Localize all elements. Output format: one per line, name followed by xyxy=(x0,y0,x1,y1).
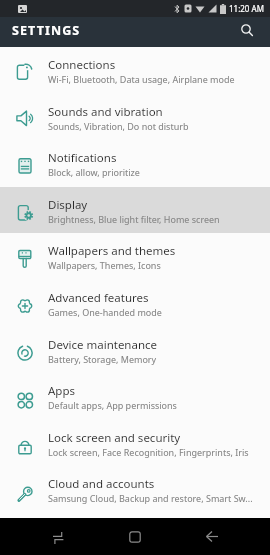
staticText: Cloud and accounts xyxy=(48,476,155,492)
button[interactable]: Notifications xyxy=(0,140,270,187)
button[interactable]: Display xyxy=(0,187,270,234)
button[interactable]: Lock screen and security xyxy=(0,420,270,467)
staticText: Lock screen, Face Recognition, Fingerpri… xyxy=(48,446,249,458)
button[interactable]: Sounds and vibration xyxy=(0,94,270,141)
button[interactable] xyxy=(197,522,227,552)
button[interactable]: Device maintenance xyxy=(0,327,270,374)
button[interactable]: Apps xyxy=(0,373,270,420)
staticText: Display xyxy=(48,197,88,213)
staticText: Games, One-handed mode xyxy=(48,306,162,318)
staticText: Apps xyxy=(48,383,76,399)
button[interactable] xyxy=(43,522,73,552)
staticText: Wi-Fi, Bluetooth, Data usage, Airplane m… xyxy=(48,73,235,85)
button[interactable] xyxy=(120,522,150,552)
staticText: Advanced features xyxy=(48,290,149,306)
staticText: Device maintenance xyxy=(48,337,158,353)
staticText: Sounds, Vibration, Do not disturb xyxy=(48,120,189,132)
button[interactable]: Cloud and accounts xyxy=(0,466,270,513)
staticText: Wallpapers, Themes, Icons xyxy=(48,259,161,271)
staticText: Sounds and vibration xyxy=(48,104,163,120)
staticText: Samsung Cloud, Backup and restore, Smart… xyxy=(48,492,253,504)
staticText: Notifications xyxy=(48,150,117,166)
staticText: Brightness, Blue light filter, Home scre… xyxy=(48,213,220,225)
staticText: Lock screen and security xyxy=(48,430,181,446)
staticText: Default apps, App permissions xyxy=(48,399,177,411)
button[interactable] xyxy=(233,16,261,44)
button[interactable]: Connections xyxy=(0,47,270,94)
staticText: Block, allow, prioritize xyxy=(48,166,140,178)
staticText: Wallpapers and themes xyxy=(48,243,176,259)
staticText: Connections xyxy=(48,57,116,73)
button[interactable]: Advanced features xyxy=(0,280,270,327)
staticText: SETTINGS xyxy=(12,22,81,39)
button[interactable]: Wallpapers and themes xyxy=(0,233,270,280)
staticText: 11:20 AM xyxy=(229,3,264,14)
staticText: Battery, Storage, Memory xyxy=(48,353,157,365)
